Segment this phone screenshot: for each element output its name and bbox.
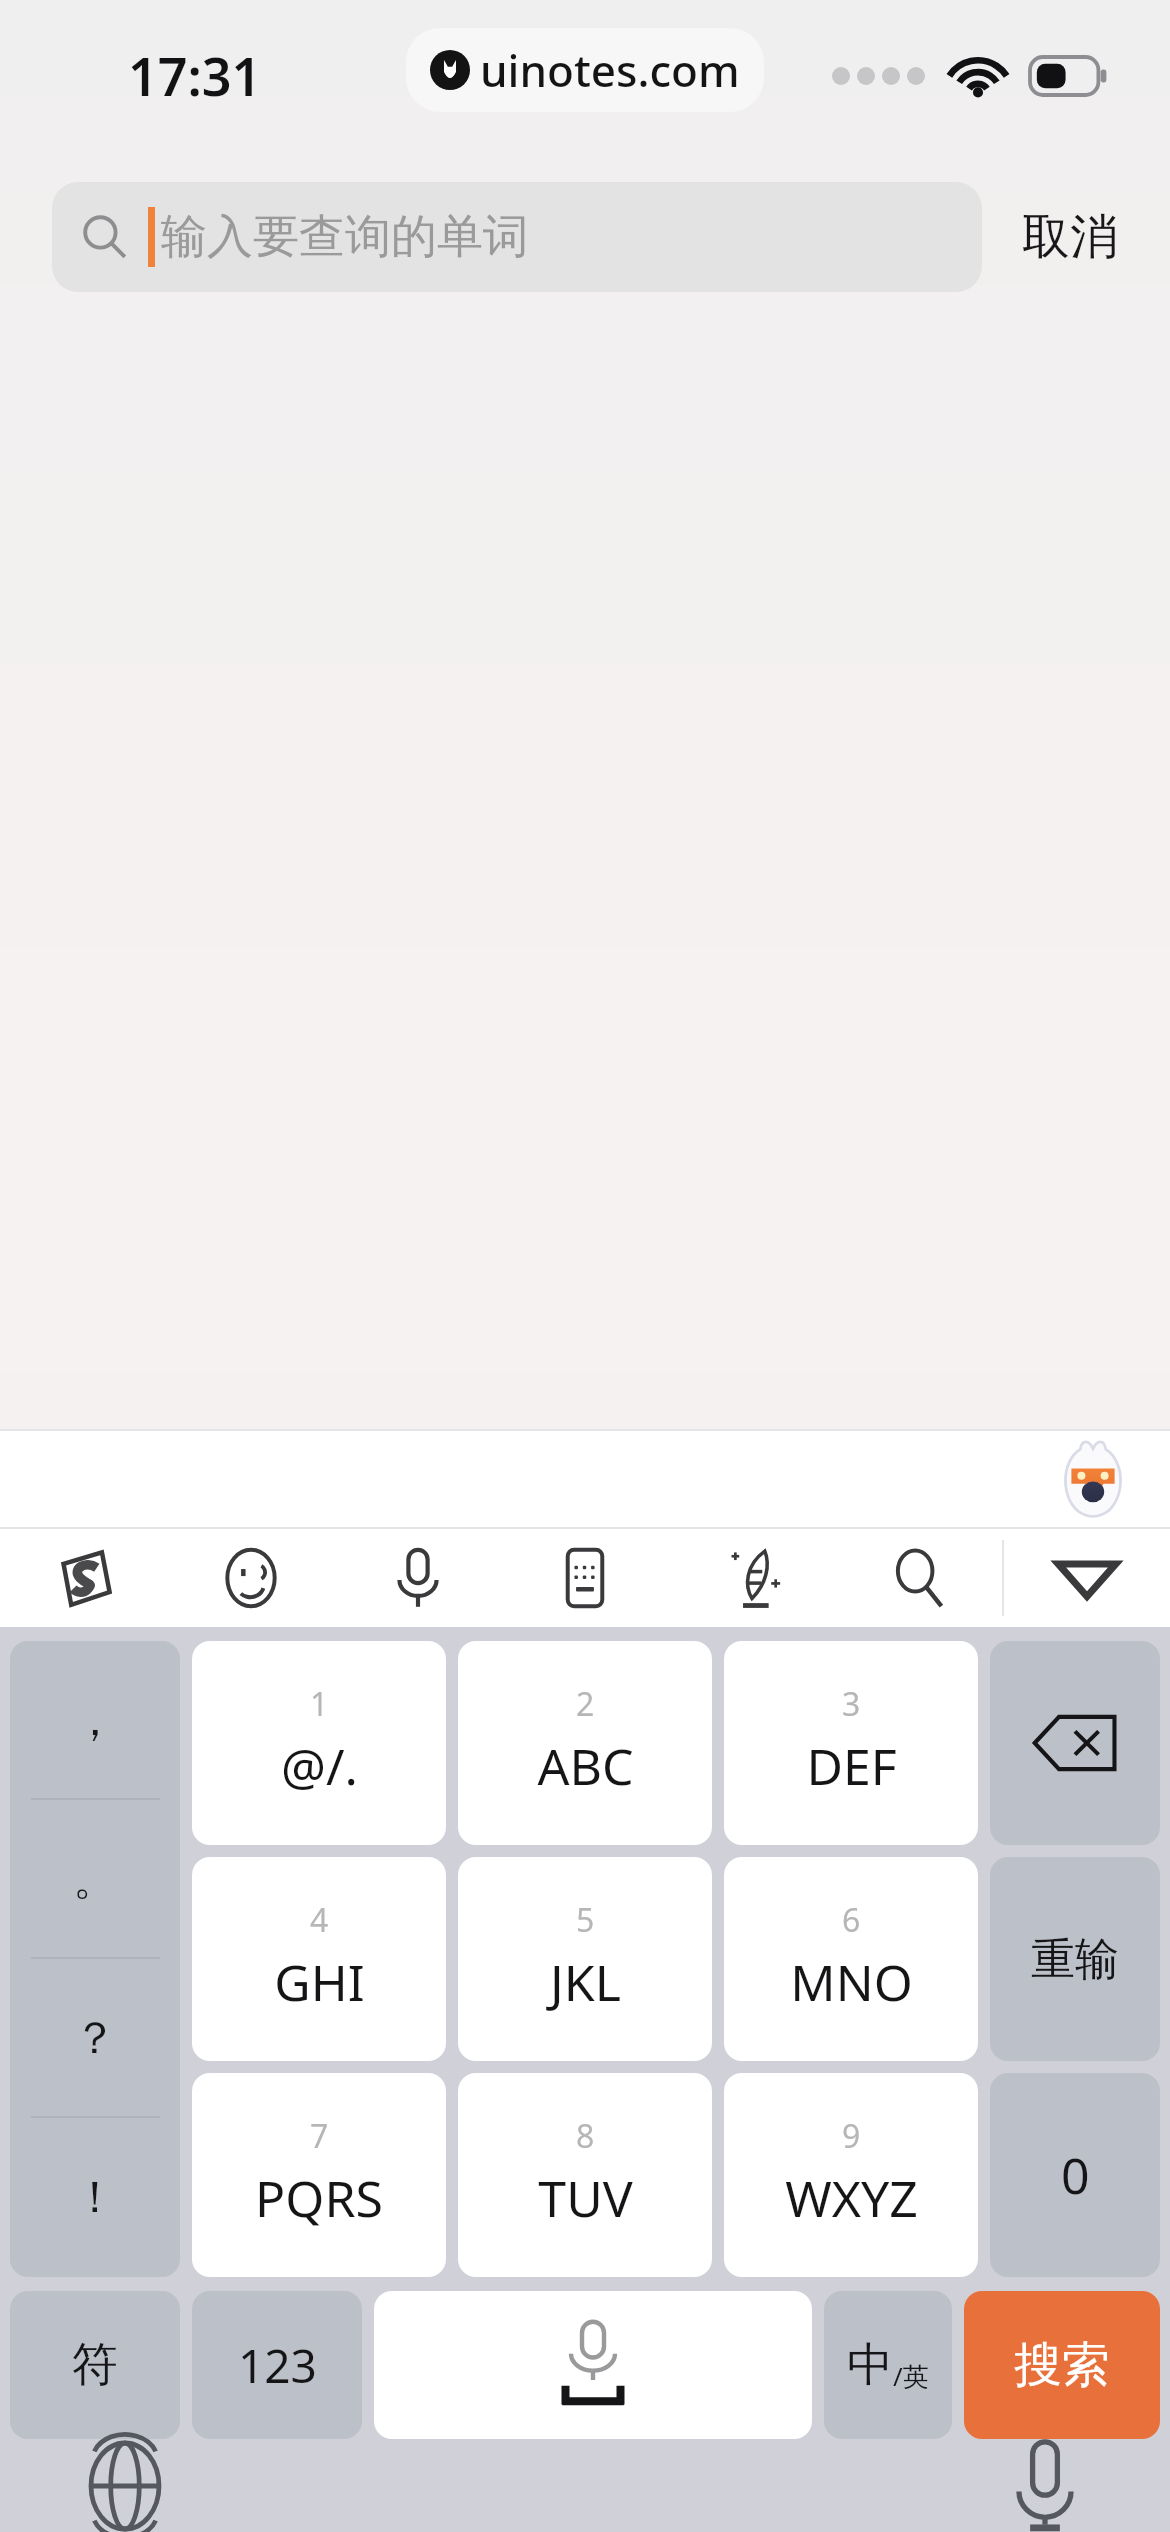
staticText: 8 <box>576 2114 595 2158</box>
staticText: 重输 <box>1031 1932 1119 1987</box>
button[interactable]: Voice input <box>334 1529 501 1627</box>
button[interactable]: ？ <box>10 1959 180 2118</box>
button[interactable]: 8 <box>458 2073 712 2277</box>
staticText: 3 <box>842 1682 861 1726</box>
staticText: 17:31 <box>128 40 262 111</box>
button[interactable]: 2 <box>458 1641 712 1845</box>
staticText: 取消 <box>1022 207 1118 267</box>
button[interactable]: Backspace <box>990 1641 1160 1845</box>
button[interactable]: 1 <box>192 1641 446 1845</box>
button[interactable]: 符 <box>10 2291 180 2439</box>
staticText: 0 <box>1061 2141 1090 2209</box>
staticText: TUV <box>538 2164 633 2232</box>
button[interactable]: ， <box>10 1641 180 1800</box>
staticText: 5 <box>576 1898 595 1942</box>
staticText: 2 <box>576 1682 595 1726</box>
staticText: 123 <box>238 2334 317 2397</box>
button[interactable]: 7 <box>192 2073 446 2277</box>
staticText: GHI <box>274 1948 365 2016</box>
staticText: 搜索 <box>1014 2335 1110 2395</box>
button[interactable]: Sogou assistant <box>1050 1436 1136 1522</box>
button[interactable]: Handwriting <box>668 1529 835 1627</box>
staticText: 输入要查询的单词 <box>161 208 529 266</box>
staticText: ABC <box>537 1732 634 1800</box>
button[interactable]: 5 <box>458 1857 712 2061</box>
staticText: 4 <box>310 1898 329 1942</box>
staticText: 中 <box>847 2336 893 2394</box>
staticText: ？ <box>73 2011 117 2066</box>
button[interactable]: Emoji <box>167 1529 334 1627</box>
button[interactable]: 0 <box>990 2073 1160 2277</box>
staticText: @/. <box>281 1732 358 1800</box>
button[interactable]: 中 <box>824 2291 952 2439</box>
staticText: DEF <box>806 1732 897 1800</box>
staticText: 9 <box>842 2114 861 2158</box>
staticText: 6 <box>842 1898 861 1942</box>
button[interactable]: ！ <box>10 2118 180 2277</box>
button[interactable]: 输入要查询的单词 <box>52 182 982 292</box>
staticText: /英 <box>893 2358 929 2394</box>
button[interactable]: Hide keyboard <box>1004 1529 1170 1627</box>
staticText: ， <box>73 1693 117 1748</box>
staticText: JKL <box>550 1948 621 2016</box>
button[interactable]: 重输 <box>990 1857 1160 2061</box>
staticText: uinotes.com <box>480 40 740 100</box>
staticText: 符 <box>72 2336 118 2394</box>
staticText: 。 <box>73 1852 117 1907</box>
button[interactable]: Sogou <box>0 1529 167 1627</box>
button[interactable]: 9 <box>724 2073 978 2277</box>
staticText: MNO <box>790 1948 913 2016</box>
staticText: 7 <box>310 2114 329 2158</box>
staticText: PQRS <box>255 2164 383 2232</box>
button[interactable]: Space <box>374 2291 812 2439</box>
button[interactable]: 3 <box>724 1641 978 1845</box>
button[interactable]: 取消 <box>1022 182 1118 292</box>
button[interactable]: 123 <box>192 2291 362 2439</box>
staticText: 1 <box>310 1682 329 1726</box>
button[interactable]: 。 <box>10 1800 180 1959</box>
button[interactable]: 6 <box>724 1857 978 2061</box>
button[interactable]: Search <box>835 1529 1002 1627</box>
button[interactable]: 搜索 <box>964 2291 1160 2439</box>
button[interactable]: Voice input <box>920 2439 1170 2532</box>
staticText: ！ <box>73 2170 117 2225</box>
button[interactable]: Switch language <box>0 2439 250 2532</box>
button[interactable]: Keyboard layout <box>501 1529 668 1627</box>
button[interactable]: 4 <box>192 1857 446 2061</box>
staticText: WXYZ <box>785 2164 918 2232</box>
